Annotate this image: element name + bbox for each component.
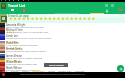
button[interactable]: Olivia Moore bbox=[6, 60, 22, 64]
staticText: play.google.com/store/apps/details?id=co… bbox=[20, 73, 85, 76]
button[interactable]: Terms bbox=[22, 69, 29, 72]
button[interactable]: Amanda Wright bbox=[6, 23, 26, 27]
button[interactable] bbox=[0, 23, 5, 29]
button[interactable]: Privacy bbox=[11, 69, 19, 72]
staticText: Travel List app bbox=[8, 14, 29, 18]
button[interactable] bbox=[0, 34, 5, 40]
button[interactable]: Add review bbox=[117, 65, 124, 72]
button[interactable]: See all reviews bbox=[44, 63, 68, 67]
button[interactable]: Michael Chen bbox=[6, 28, 23, 32]
button[interactable]: About bbox=[48, 69, 55, 72]
button[interactable]: Help bbox=[2, 69, 8, 72]
button[interactable]: Sarah Lee bbox=[6, 34, 19, 38]
staticText: Travel List bbox=[8, 3, 26, 8]
button[interactable] bbox=[0, 66, 5, 72]
button[interactable] bbox=[0, 14, 7, 23]
button[interactable]: Developers bbox=[32, 69, 45, 72]
staticText: Saved me so much time on my holiday bbox=[6, 36, 52, 39]
staticText: See all reviews bbox=[49, 64, 64, 67]
staticText: Really handy when travelling bbox=[6, 68, 40, 71]
staticText: travel-list.example.com bbox=[55, 12, 79, 15]
button[interactable] bbox=[0, 41, 5, 47]
button[interactable]: Google Play bbox=[58, 69, 72, 72]
staticText: Good app but it needs updates bbox=[6, 56, 43, 59]
button[interactable] bbox=[0, 47, 5, 53]
staticText: Absolutely love this app for trips bbox=[6, 25, 44, 28]
button[interactable]: Download bbox=[105, 9, 109, 13]
staticText: Works perfectly even when offline bbox=[6, 49, 46, 52]
button[interactable]: Emma Garcia bbox=[6, 47, 23, 51]
button[interactable] bbox=[0, 28, 5, 34]
button[interactable]: James Brown bbox=[6, 54, 23, 58]
staticText: Excellent travel helper app bbox=[6, 62, 38, 65]
button[interactable]: Sitemap bbox=[75, 69, 85, 72]
staticText: Great planner, easy to use every day bbox=[6, 30, 49, 33]
button[interactable]: David Kim bbox=[6, 41, 19, 45]
staticText: Nice clean interface design bbox=[6, 43, 38, 46]
button[interactable] bbox=[0, 54, 5, 60]
button[interactable]: Noah Wilson bbox=[6, 66, 22, 70]
button[interactable] bbox=[1, 3, 6, 9]
button[interactable] bbox=[0, 60, 5, 66]
